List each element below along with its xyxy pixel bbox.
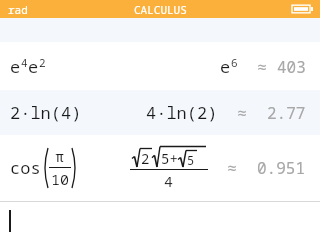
staticText: 2.77 [267,102,306,124]
staticText: rad [8,2,28,17]
staticText: 4·ln(2) [146,101,218,124]
other: Battery [292,3,314,15]
staticText: 6 [231,55,238,70]
staticText: e [220,55,231,78]
staticText: ≈ [238,56,277,78]
staticText: e [28,55,39,78]
button[interactable]: 2·ln(4) [0,90,320,135]
staticText: 2·ln(4) [10,101,82,124]
staticText: cos [10,156,41,179]
staticText: 403 [277,56,306,78]
staticText: 4 [164,171,174,191]
button[interactable]: rad [6,2,30,17]
button[interactable]: cos [0,135,320,200]
staticText: CALCULUS [134,2,187,17]
staticText: 10 [51,169,70,189]
staticText: 2 [39,55,46,70]
staticText: 5+ [161,149,178,168]
staticText: π [55,146,65,166]
staticText: ≈ [218,102,267,124]
staticText: e [10,55,21,78]
staticText: ≈ [208,157,257,179]
button[interactable] [0,202,320,240]
button[interactable]: e [0,42,320,90]
staticText: 5 [187,152,195,168]
staticText: 0.951 [257,157,306,179]
staticText: 2 [141,149,150,168]
staticText: 4 [21,55,28,70]
